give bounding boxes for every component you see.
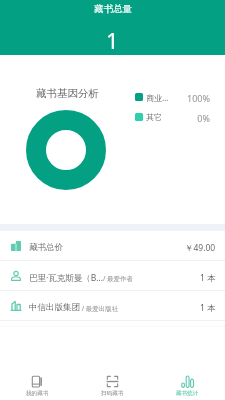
- staticText: 扫码藏书: [101, 390, 124, 397]
- button[interactable]: 扫码藏书: [75, 371, 150, 400]
- button[interactable]: 巴里·瓦克斯曼（B…: [0, 261, 225, 290]
- staticText: 巴里·瓦克斯曼（B…: [29, 272, 103, 284]
- staticText: / 最爱作者: [103, 274, 134, 283]
- button[interactable]: 中信出版集团: [0, 291, 225, 320]
- staticText: 1: [106, 25, 119, 55]
- staticText: 中信出版集团: [29, 302, 80, 313]
- staticText: 藏书总量: [94, 3, 132, 15]
- staticText: 100%: [184, 92, 210, 104]
- staticText: 其它: [146, 112, 180, 122]
- staticText: 藏书统计: [176, 390, 199, 397]
- staticText: 0%: [184, 112, 210, 124]
- staticText: 1 本: [200, 302, 216, 314]
- staticText: 藏书总价: [29, 242, 63, 253]
- button[interactable]: 藏书总价: [0, 231, 225, 260]
- other: 我的藏书: [31, 375, 44, 388]
- staticText: 藏书基因分析: [36, 87, 99, 100]
- staticText: 1 本: [200, 272, 216, 284]
- other: 藏书统计: [181, 375, 194, 388]
- staticText: 我的藏书: [26, 390, 49, 397]
- button[interactable]: 藏书统计: [150, 371, 225, 400]
- button[interactable]: 我的藏书: [0, 371, 75, 400]
- other: 扫码藏书: [106, 375, 119, 388]
- staticText: 商业…: [146, 92, 180, 103]
- staticText: ￥49.00: [185, 242, 216, 254]
- staticText: / 最爱出版社: [80, 304, 119, 313]
